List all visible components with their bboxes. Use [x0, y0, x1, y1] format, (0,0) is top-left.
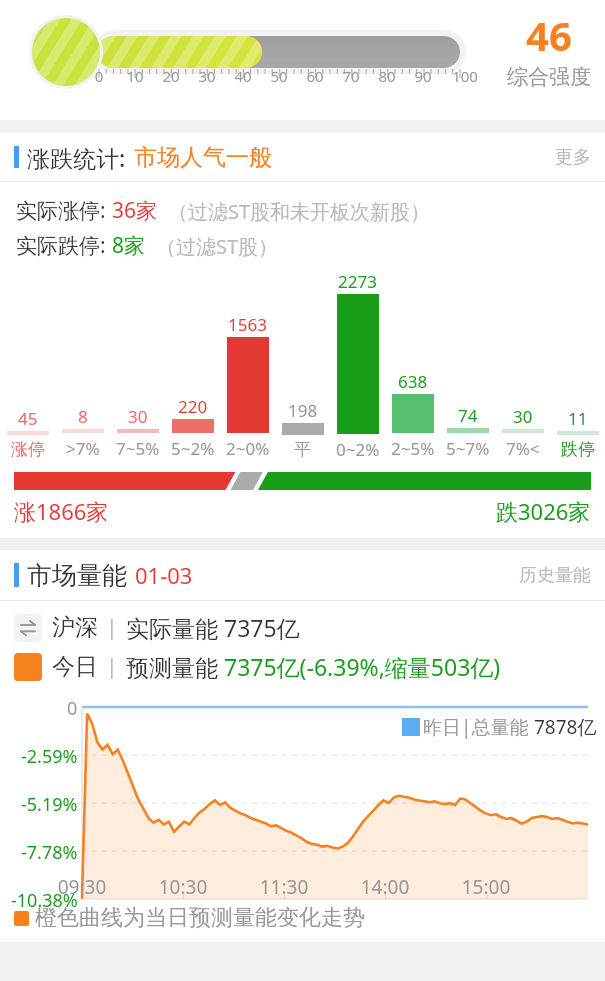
staticText: 5~2% [171, 437, 215, 460]
staticText: 198 [288, 399, 318, 422]
staticText: 实际跌停: [16, 231, 112, 260]
staticText: -2.59% [21, 744, 78, 769]
staticText: 涨1866家 [14, 496, 109, 526]
staticText: 10:30 [153, 874, 213, 900]
staticText: 市场量能 [27, 560, 127, 591]
staticText: 10 [125, 66, 145, 86]
staticText: 20 [161, 66, 181, 86]
staticText: 100 [449, 66, 481, 86]
staticText: 实际涨停: [16, 196, 112, 225]
staticText: 8家 [112, 231, 146, 260]
button[interactable]: 涨跌统计: [0, 133, 605, 181]
staticText: 综合强度 [507, 64, 591, 90]
staticText: 11 [568, 407, 588, 430]
staticText: 60 [305, 66, 325, 86]
staticText: -10.38% [11, 888, 78, 913]
staticText: 0~2% [336, 438, 380, 460]
staticText: 沪深 [52, 613, 98, 642]
staticText: 11:30 [254, 874, 314, 900]
staticText: 2273 [338, 270, 377, 293]
staticText: 0 [67, 696, 78, 721]
staticText: 跌停 [561, 439, 595, 460]
staticText: 46 [526, 8, 572, 62]
staticText: 45 [18, 407, 38, 430]
staticText: 7375亿(-6.39%,缩量503亿) [224, 651, 501, 682]
staticText: 30 [513, 405, 533, 428]
staticText: 涨停 [11, 439, 45, 460]
staticText: 90 [413, 66, 433, 86]
staticText: >7% [66, 437, 100, 460]
staticText: 30 [128, 405, 148, 428]
staticText: 80 [377, 66, 397, 86]
staticText: 14:00 [355, 874, 415, 900]
staticText: （过滤ST股） [156, 233, 279, 260]
staticText: 50 [269, 66, 289, 86]
staticText: 历史量能 [519, 564, 591, 587]
staticText: 7878亿 [534, 714, 597, 740]
staticText: 30 [197, 66, 217, 86]
staticText: 220 [178, 395, 208, 418]
staticText: 36家 [112, 196, 158, 225]
staticText: 平 [294, 439, 311, 460]
staticText: 7~5% [116, 437, 160, 460]
staticText: 8 [78, 405, 88, 428]
staticText: 涨跌统计: [27, 142, 126, 173]
staticText: 09:30 [52, 874, 112, 900]
staticText: 昨日|总量能 [423, 714, 534, 740]
staticText: 跌3026家 [496, 496, 591, 526]
staticText: 实际量能 7375亿 [126, 612, 300, 643]
staticText: 橙色曲线为当日预测量能变化走势 [35, 904, 365, 932]
staticText: 5~7% [446, 437, 490, 460]
staticText: -7.78% [21, 840, 78, 865]
staticText: 7%< [506, 437, 540, 460]
staticText: 1563 [228, 313, 267, 336]
button[interactable]: 市场量能 [0, 550, 605, 600]
staticText: 15:00 [456, 874, 516, 900]
staticText: | [106, 613, 118, 642]
staticText: 更多 [555, 146, 591, 169]
staticText: 市场人气一般 [134, 143, 272, 172]
staticText: 70 [341, 66, 361, 86]
staticText: 2~5% [391, 437, 435, 460]
staticText: | [106, 652, 118, 681]
staticText: 2~0% [226, 437, 270, 460]
staticText: 预测量能 [126, 651, 224, 682]
staticText: （过滤ST股和未开板次新股） [168, 198, 431, 225]
staticText: 0 [89, 66, 109, 86]
staticText: -5.19% [21, 792, 78, 817]
staticText: 638 [398, 370, 428, 393]
staticText: 今日 [52, 652, 98, 681]
staticText: 01-03 [135, 560, 193, 590]
staticText: 74 [458, 404, 478, 427]
staticText: 40 [233, 66, 253, 86]
